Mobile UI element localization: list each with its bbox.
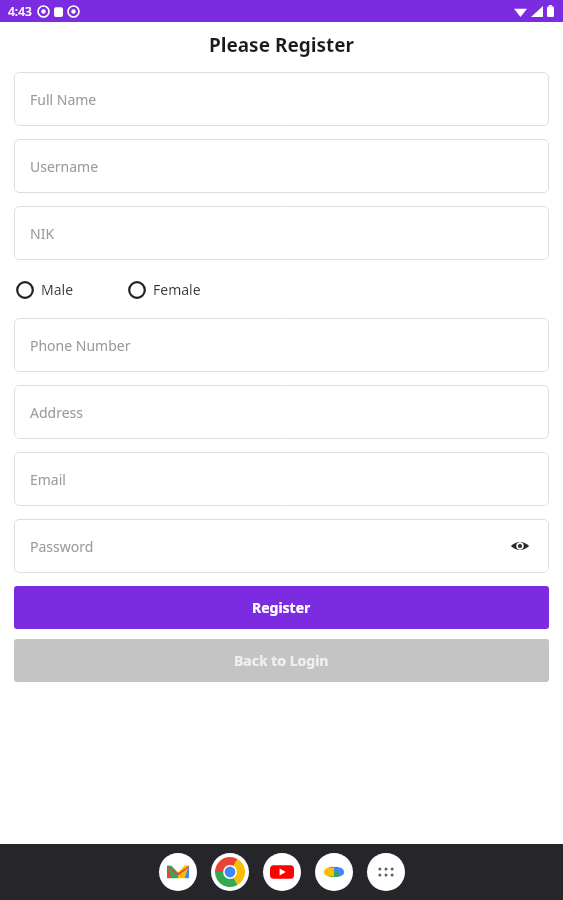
- button[interactable]: Male: [16, 280, 74, 299]
- button[interactable]: Address: [14, 385, 549, 439]
- staticText: Register: [252, 598, 311, 617]
- button[interactable]: Female: [128, 280, 201, 299]
- button[interactable]: Username: [14, 139, 549, 193]
- button[interactable]: All apps: [367, 853, 405, 891]
- staticText: 4:43: [8, 3, 32, 19]
- button[interactable]: Gmail: [159, 853, 197, 891]
- button[interactable]: Full Name: [14, 72, 549, 126]
- staticText: Full Name: [30, 90, 97, 109]
- button[interactable]: YouTube: [263, 853, 301, 891]
- staticText: Address: [30, 403, 83, 422]
- button[interactable]: Password: [14, 519, 549, 573]
- staticText: Female: [153, 280, 201, 299]
- button[interactable]: Phone Number: [14, 318, 549, 372]
- staticText: NIK: [30, 224, 55, 243]
- staticText: Phone Number: [30, 336, 131, 355]
- button[interactable]: Register: [14, 586, 549, 629]
- button[interactable]: Back to Login: [14, 639, 549, 682]
- button[interactable]: NIK: [14, 206, 549, 260]
- staticText: Back to Login: [234, 651, 329, 670]
- staticText: Please Register: [0, 32, 563, 58]
- button[interactable]: Google Photos: [315, 853, 353, 891]
- button[interactable]: Show password: [507, 533, 533, 559]
- staticText: Password: [30, 537, 94, 556]
- staticText: Male: [41, 280, 74, 299]
- button[interactable]: Email: [14, 452, 549, 506]
- staticText: Username: [30, 157, 99, 176]
- staticText: Email: [30, 470, 66, 489]
- button[interactable]: Chrome: [211, 853, 249, 891]
